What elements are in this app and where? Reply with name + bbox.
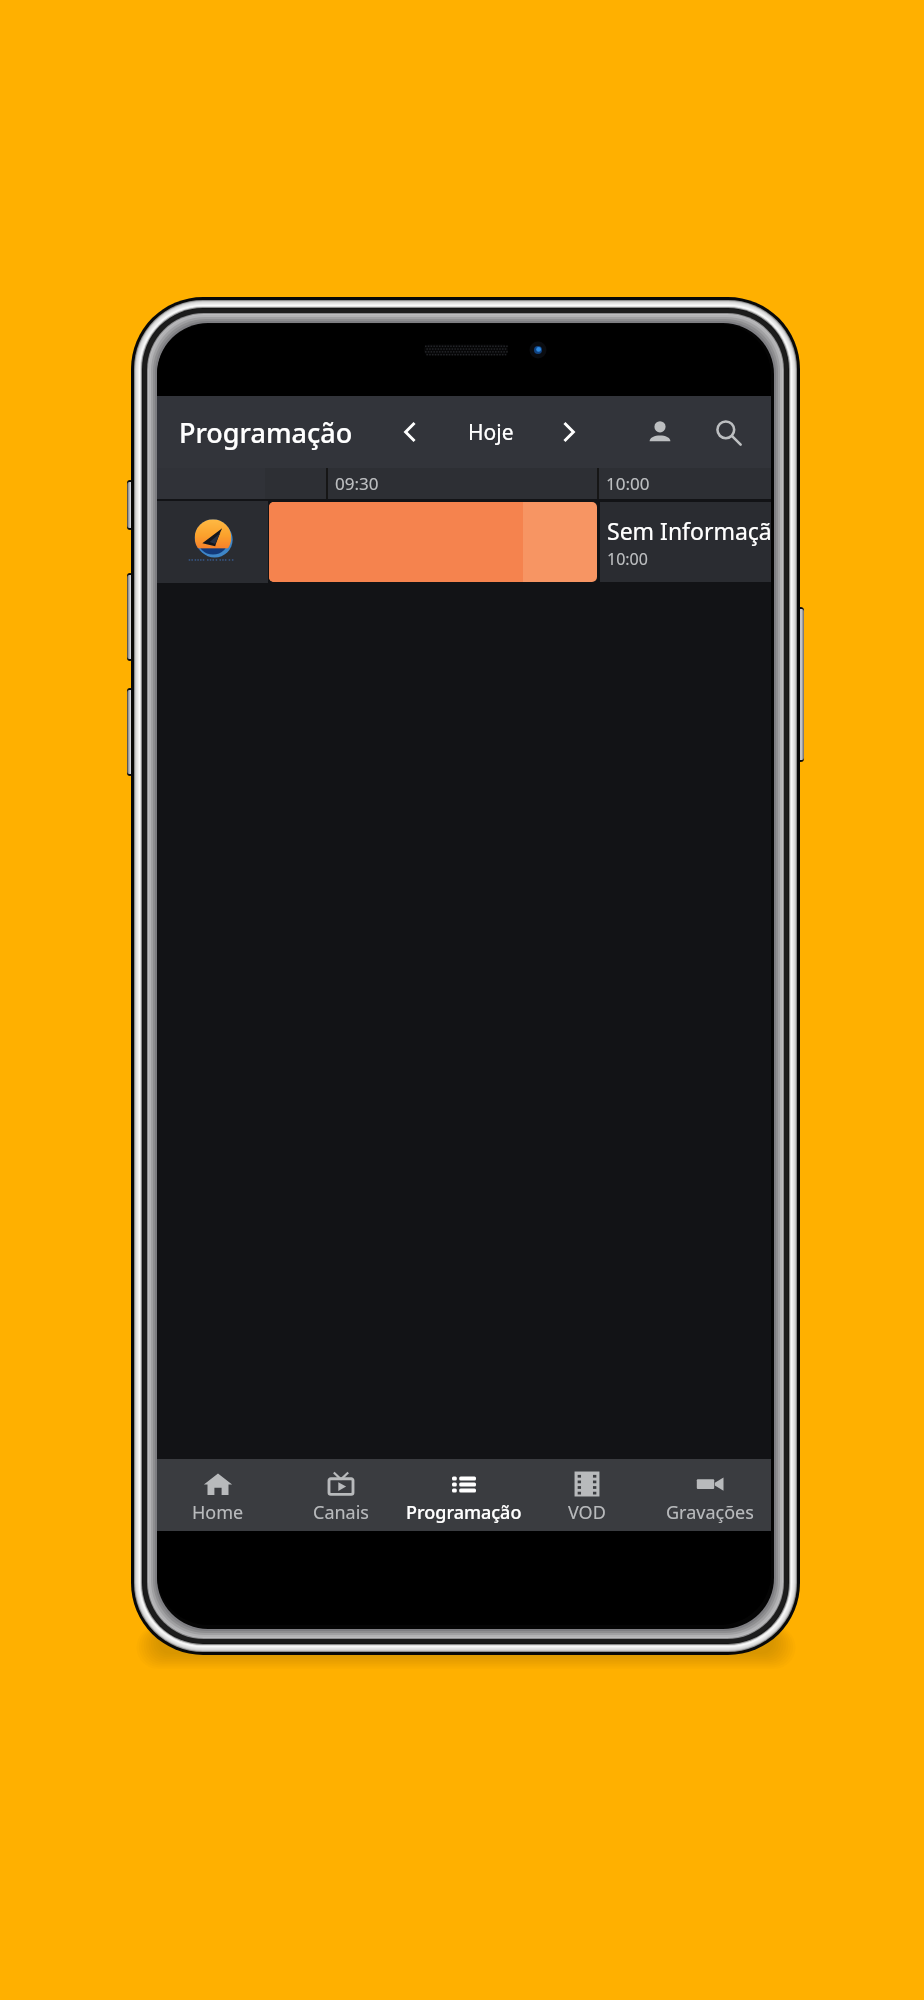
staticText: 10:00	[607, 548, 648, 570]
staticText: Programação	[406, 1500, 522, 1525]
staticText: Canais	[313, 1500, 369, 1525]
staticText: VOD	[568, 1500, 606, 1525]
button[interactable]: Home	[157, 1459, 279, 1531]
button[interactable]: Perfil	[634, 406, 686, 458]
staticText: Home	[192, 1500, 244, 1525]
button[interactable]: Dia anterior	[387, 409, 433, 455]
button[interactable]: TV Pérola Negra	[157, 501, 268, 583]
button[interactable]: Pesquisar	[702, 406, 754, 458]
button[interactable]: Gravações	[648, 1459, 771, 1531]
staticText: Hoje	[468, 418, 514, 447]
button[interactable]: Canais	[279, 1459, 402, 1531]
button[interactable]: VOD	[525, 1459, 648, 1531]
button[interactable]	[269, 502, 597, 582]
staticText: Sem Informação	[607, 515, 771, 546]
button[interactable]: Programação	[402, 1459, 525, 1531]
button[interactable]: Próximo dia	[546, 409, 592, 455]
staticText: 09:30	[335, 472, 379, 495]
staticText: Gravações	[666, 1500, 754, 1525]
staticText: Programação	[179, 414, 353, 451]
button[interactable]: Sem Informação	[600, 502, 771, 582]
button[interactable]: Hoje	[451, 396, 531, 468]
staticText: 10:00	[606, 472, 650, 495]
